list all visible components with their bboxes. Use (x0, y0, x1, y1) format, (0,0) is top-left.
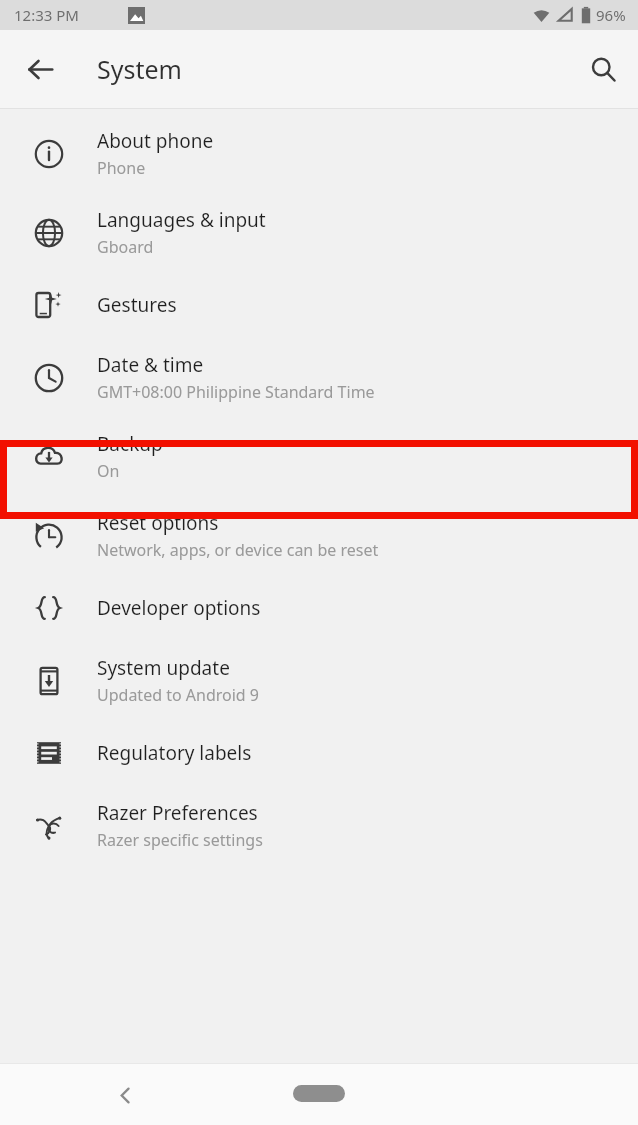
staticText: Reset options (97, 510, 219, 536)
staticText: GMT+08:00 Philippine Standard Time (97, 381, 375, 403)
staticText: Razer specific settings (97, 829, 263, 851)
staticText: Regulatory labels (97, 740, 252, 766)
staticText: System (97, 52, 182, 86)
button[interactable]: Back (16, 45, 64, 93)
button[interactable]: Reset options (0, 496, 638, 575)
button[interactable]: Date & time (0, 338, 638, 417)
staticText: 96% (596, 5, 626, 25)
other: Image notification (128, 7, 145, 24)
button[interactable]: Search (579, 45, 627, 93)
button[interactable]: System update (0, 641, 638, 720)
staticText: Date & time (97, 352, 204, 378)
button[interactable]: Languages & input (0, 193, 638, 272)
button[interactable]: Backup (0, 417, 638, 496)
button[interactable]: Regulatory labels (0, 720, 638, 786)
staticText: Gboard (97, 236, 154, 258)
staticText: Backup (97, 431, 163, 457)
button[interactable]: Home (293, 1085, 345, 1102)
staticText: Razer Preferences (97, 800, 258, 826)
staticText: About phone (97, 128, 214, 154)
staticText: Developer options (97, 595, 261, 621)
staticText: Network, apps, or device can be reset (97, 539, 379, 561)
button[interactable]: Developer options (0, 575, 638, 641)
staticText: System update (97, 655, 230, 681)
staticText: Phone (97, 157, 146, 179)
staticText: Gestures (97, 292, 177, 318)
staticText: Languages & input (97, 207, 266, 233)
staticText: 12:33 PM (14, 5, 79, 25)
button[interactable]: Gestures (0, 272, 638, 338)
button[interactable]: Razer Preferences (0, 786, 638, 865)
button[interactable]: Back (101, 1071, 149, 1119)
staticText: On (97, 460, 120, 482)
button[interactable]: About phone (0, 114, 638, 193)
staticText: Updated to Android 9 (97, 684, 259, 706)
